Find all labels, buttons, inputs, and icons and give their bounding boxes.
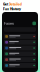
- staticText: Get: [3, 2, 8, 6]
- button[interactable]: [4, 40, 36, 45]
- button[interactable]: New fax: [32, 22, 36, 25]
- button[interactable]: [4, 63, 36, 68]
- staticText: Detailed: [9, 2, 22, 6]
- button[interactable]: [4, 34, 36, 39]
- button[interactable]: [4, 57, 36, 62]
- button[interactable]: [4, 46, 36, 50]
- staticText: Faxes: [4, 21, 14, 25]
- staticText: Fax History: [3, 7, 21, 11]
- button[interactable]: [4, 51, 36, 56]
